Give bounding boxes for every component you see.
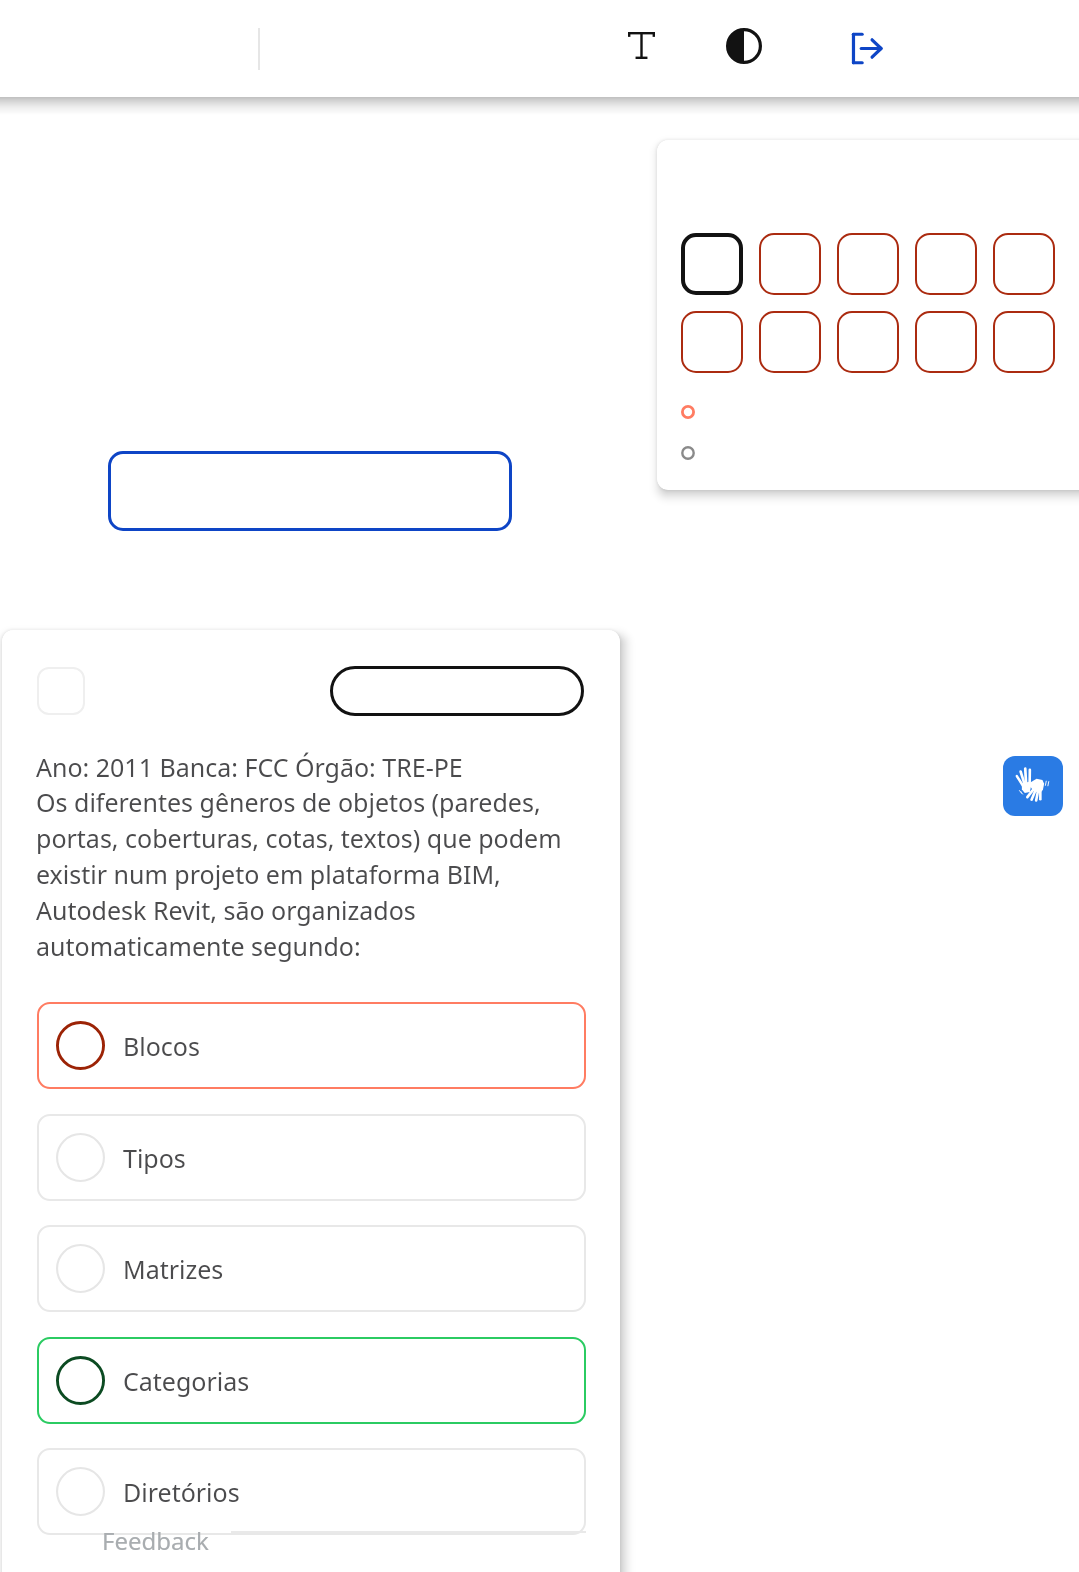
staticText: Blocos: [123, 1029, 200, 1063]
button[interactable]: Questão 7: [759, 311, 821, 373]
button[interactable]: Feedback: [102, 1524, 209, 1557]
button[interactable]: Questão 6: [681, 311, 743, 373]
button[interactable]: Questão 8: [837, 311, 899, 373]
button[interactable]: Questão 10: [993, 311, 1055, 373]
button[interactable]: Matrizes: [37, 1225, 586, 1312]
button[interactable]: Sair: [833, 15, 900, 82]
button[interactable]: Questão 5: [993, 233, 1055, 295]
button[interactable]: Questão 9: [915, 311, 977, 373]
staticText: Matrizes: [123, 1252, 224, 1286]
button[interactable]: Campo de entrada: [108, 451, 512, 531]
button[interactable]: Questão 4: [915, 233, 977, 295]
button[interactable]: Tipos: [37, 1114, 586, 1201]
staticText: Diretórios: [123, 1475, 240, 1509]
button[interactable]: Questão 3: [837, 233, 899, 295]
staticText: Ano: 2011 Banca: FCC Órgão: TRE-PE Os di…: [36, 750, 581, 964]
button[interactable]: Tamanho do texto: [610, 14, 673, 77]
button[interactable]: Responder: [330, 666, 584, 716]
button[interactable]: Marcar questão: [37, 667, 85, 715]
button[interactable]: Acessibilidade em Libras: [1003, 756, 1063, 816]
staticText: Categorias: [123, 1364, 250, 1398]
button[interactable]: Contraste: [708, 10, 780, 82]
button[interactable]: Blocos: [37, 1002, 586, 1089]
button[interactable]: Questão 2: [759, 233, 821, 295]
button[interactable]: Diretórios: [37, 1448, 586, 1535]
staticText: Tipos: [123, 1141, 186, 1175]
button[interactable]: Questão 1: [681, 233, 743, 295]
button[interactable]: Categorias: [37, 1337, 586, 1424]
